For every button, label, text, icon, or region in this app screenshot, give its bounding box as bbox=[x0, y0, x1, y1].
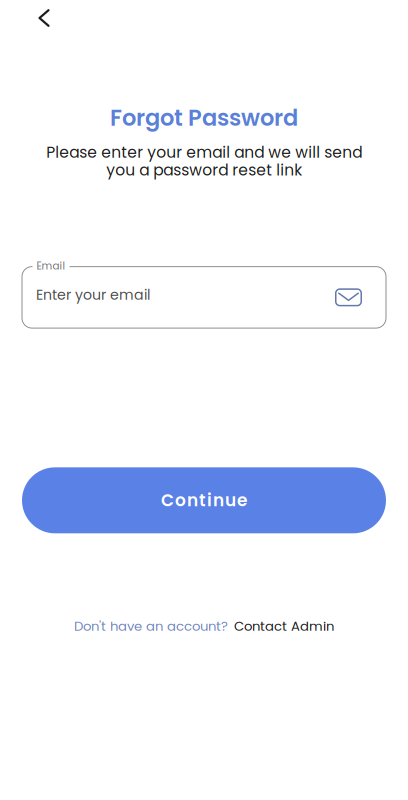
staticText: Don't have an account? bbox=[74, 617, 228, 635]
staticText: Please enter your email and we will send… bbox=[46, 141, 362, 181]
staticText: Forgot Password bbox=[110, 102, 298, 133]
staticText: Email bbox=[36, 259, 65, 273]
staticText: C o n t i n u e bbox=[161, 488, 247, 512]
button[interactable]: Back bbox=[25, 1, 63, 35]
button[interactable]: Don't have an account? bbox=[74, 617, 334, 635]
staticText: Enter your email bbox=[36, 285, 150, 305]
button[interactable]: C o n t i n u e bbox=[22, 467, 386, 533]
staticText: Contact Admin bbox=[234, 617, 334, 635]
